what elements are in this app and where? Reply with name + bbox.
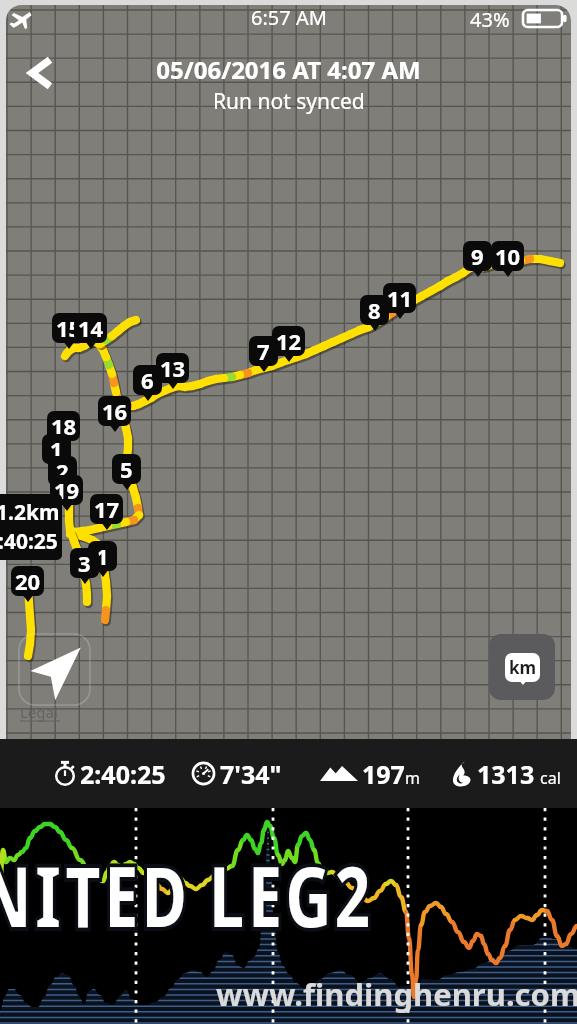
button[interactable]: Back <box>16 48 66 98</box>
staticText: 6 <box>141 365 154 395</box>
staticText: km <box>509 656 537 679</box>
staticText: 10 <box>495 241 521 271</box>
staticText: 3 <box>78 548 91 578</box>
staticText: 17 <box>94 494 120 524</box>
staticText: 13 <box>160 353 186 383</box>
staticText: 2 <box>56 456 69 486</box>
staticText: 1 <box>50 434 63 464</box>
staticText: 16 <box>102 396 128 426</box>
staticText: NITED LEG2 <box>0 834 373 954</box>
staticText: 197 <box>362 757 405 791</box>
staticText: m <box>405 767 420 789</box>
staticText: cal <box>540 767 561 789</box>
staticText: 14 <box>78 313 104 343</box>
staticText: 18 <box>51 411 77 441</box>
staticText: 05/06/2016 AT 4:07 AM <box>156 53 421 86</box>
staticText: 20 <box>15 566 41 596</box>
staticText: 19 <box>54 475 80 505</box>
staticText: 5 <box>120 454 133 484</box>
staticText: 21.2km <box>0 498 60 527</box>
staticText: 15 <box>56 313 82 343</box>
staticText: 9 <box>471 241 484 271</box>
staticText: 8 <box>368 295 381 325</box>
staticText: 7'34" <box>220 757 282 791</box>
staticText: 2:40:25 <box>80 757 166 791</box>
staticText: 43% <box>470 6 510 33</box>
staticText: 1 <box>96 541 109 571</box>
button[interactable]: My location <box>18 633 91 706</box>
staticText: 2:40:25 <box>0 527 58 556</box>
staticText: 12 <box>276 326 302 356</box>
staticText: 11 <box>387 283 413 313</box>
staticText: Run not synced <box>213 87 365 116</box>
staticText: Legal <box>20 702 58 722</box>
staticText: 7 <box>257 336 270 366</box>
staticText: NITED LEG2 <box>0 834 373 954</box>
staticText: 1313 <box>477 757 535 791</box>
staticText: 6:57 AM <box>251 4 327 31</box>
button[interactable]: Units km <box>489 634 555 700</box>
staticText: www.findinghenru.com <box>216 973 577 1015</box>
